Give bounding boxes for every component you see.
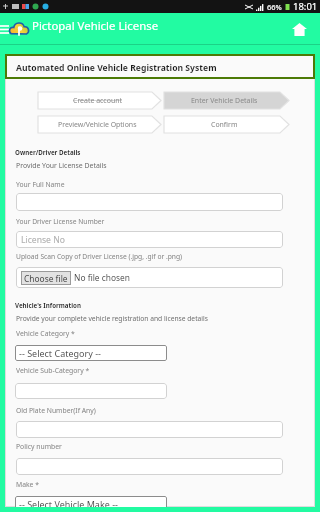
- staticText: License No: [21, 234, 65, 246]
- button[interactable]: Preview/Vehicle Options: [38, 116, 161, 133]
- button[interactable]: Home: [289, 19, 309, 39]
- staticText: 66%: [267, 2, 282, 12]
- button[interactable]: [16, 421, 283, 438]
- staticText: Upload Scan Copy of Driver License (.jpg…: [16, 252, 183, 261]
- button[interactable]: [16, 458, 283, 475]
- button[interactable]: Create account: [38, 92, 161, 109]
- staticText: Vehicle Category *: [16, 329, 75, 338]
- button[interactable]: [15, 383, 167, 399]
- staticText: -- Select Category --: [19, 347, 101, 359]
- staticText: Pictopal Vehicle License: [32, 18, 159, 34]
- button[interactable]: -- Select Category --: [15, 345, 167, 361]
- staticText: Confirm: [211, 120, 238, 129]
- staticText: Provide Your License Details: [16, 161, 107, 170]
- staticText: Vehicle's Information: [15, 301, 81, 309]
- staticText: -- Select Vehicle Make --: [19, 498, 118, 510]
- button[interactable]: Navigation menu: [0, 22, 10, 36]
- button[interactable]: Confirm: [164, 116, 289, 133]
- staticText: Preview/Vehicle Options: [58, 120, 137, 129]
- staticText: Your Full Name: [16, 180, 65, 189]
- button[interactable]: -- Select Vehicle Make --: [15, 496, 167, 512]
- staticText: Enter Vehicle Details: [191, 96, 258, 105]
- button[interactable]: [16, 193, 283, 211]
- staticText: Owner/Driver Details: [15, 148, 81, 156]
- staticText: 18:01: [293, 0, 318, 13]
- button[interactable]: License No: [16, 231, 283, 248]
- staticText: Vehicle Sub-Category *: [16, 366, 90, 375]
- button[interactable]: Enter Vehicle Details: [164, 92, 289, 109]
- staticText: Old Plate Number(If Any): [16, 406, 96, 415]
- staticText: Automated Online Vehicle Registration Sy…: [16, 62, 217, 74]
- staticText: Choose file: [24, 273, 68, 284]
- staticText: Create account: [73, 96, 122, 105]
- staticText: No file chosen: [74, 272, 130, 283]
- button[interactable]: Choose file: [21, 271, 71, 285]
- staticText: Make *: [16, 480, 39, 489]
- staticText: Your Driver License Number: [16, 217, 105, 226]
- staticText: Policy number: [16, 442, 62, 451]
- staticText: Provide your complete vehicle registrati…: [16, 314, 208, 323]
